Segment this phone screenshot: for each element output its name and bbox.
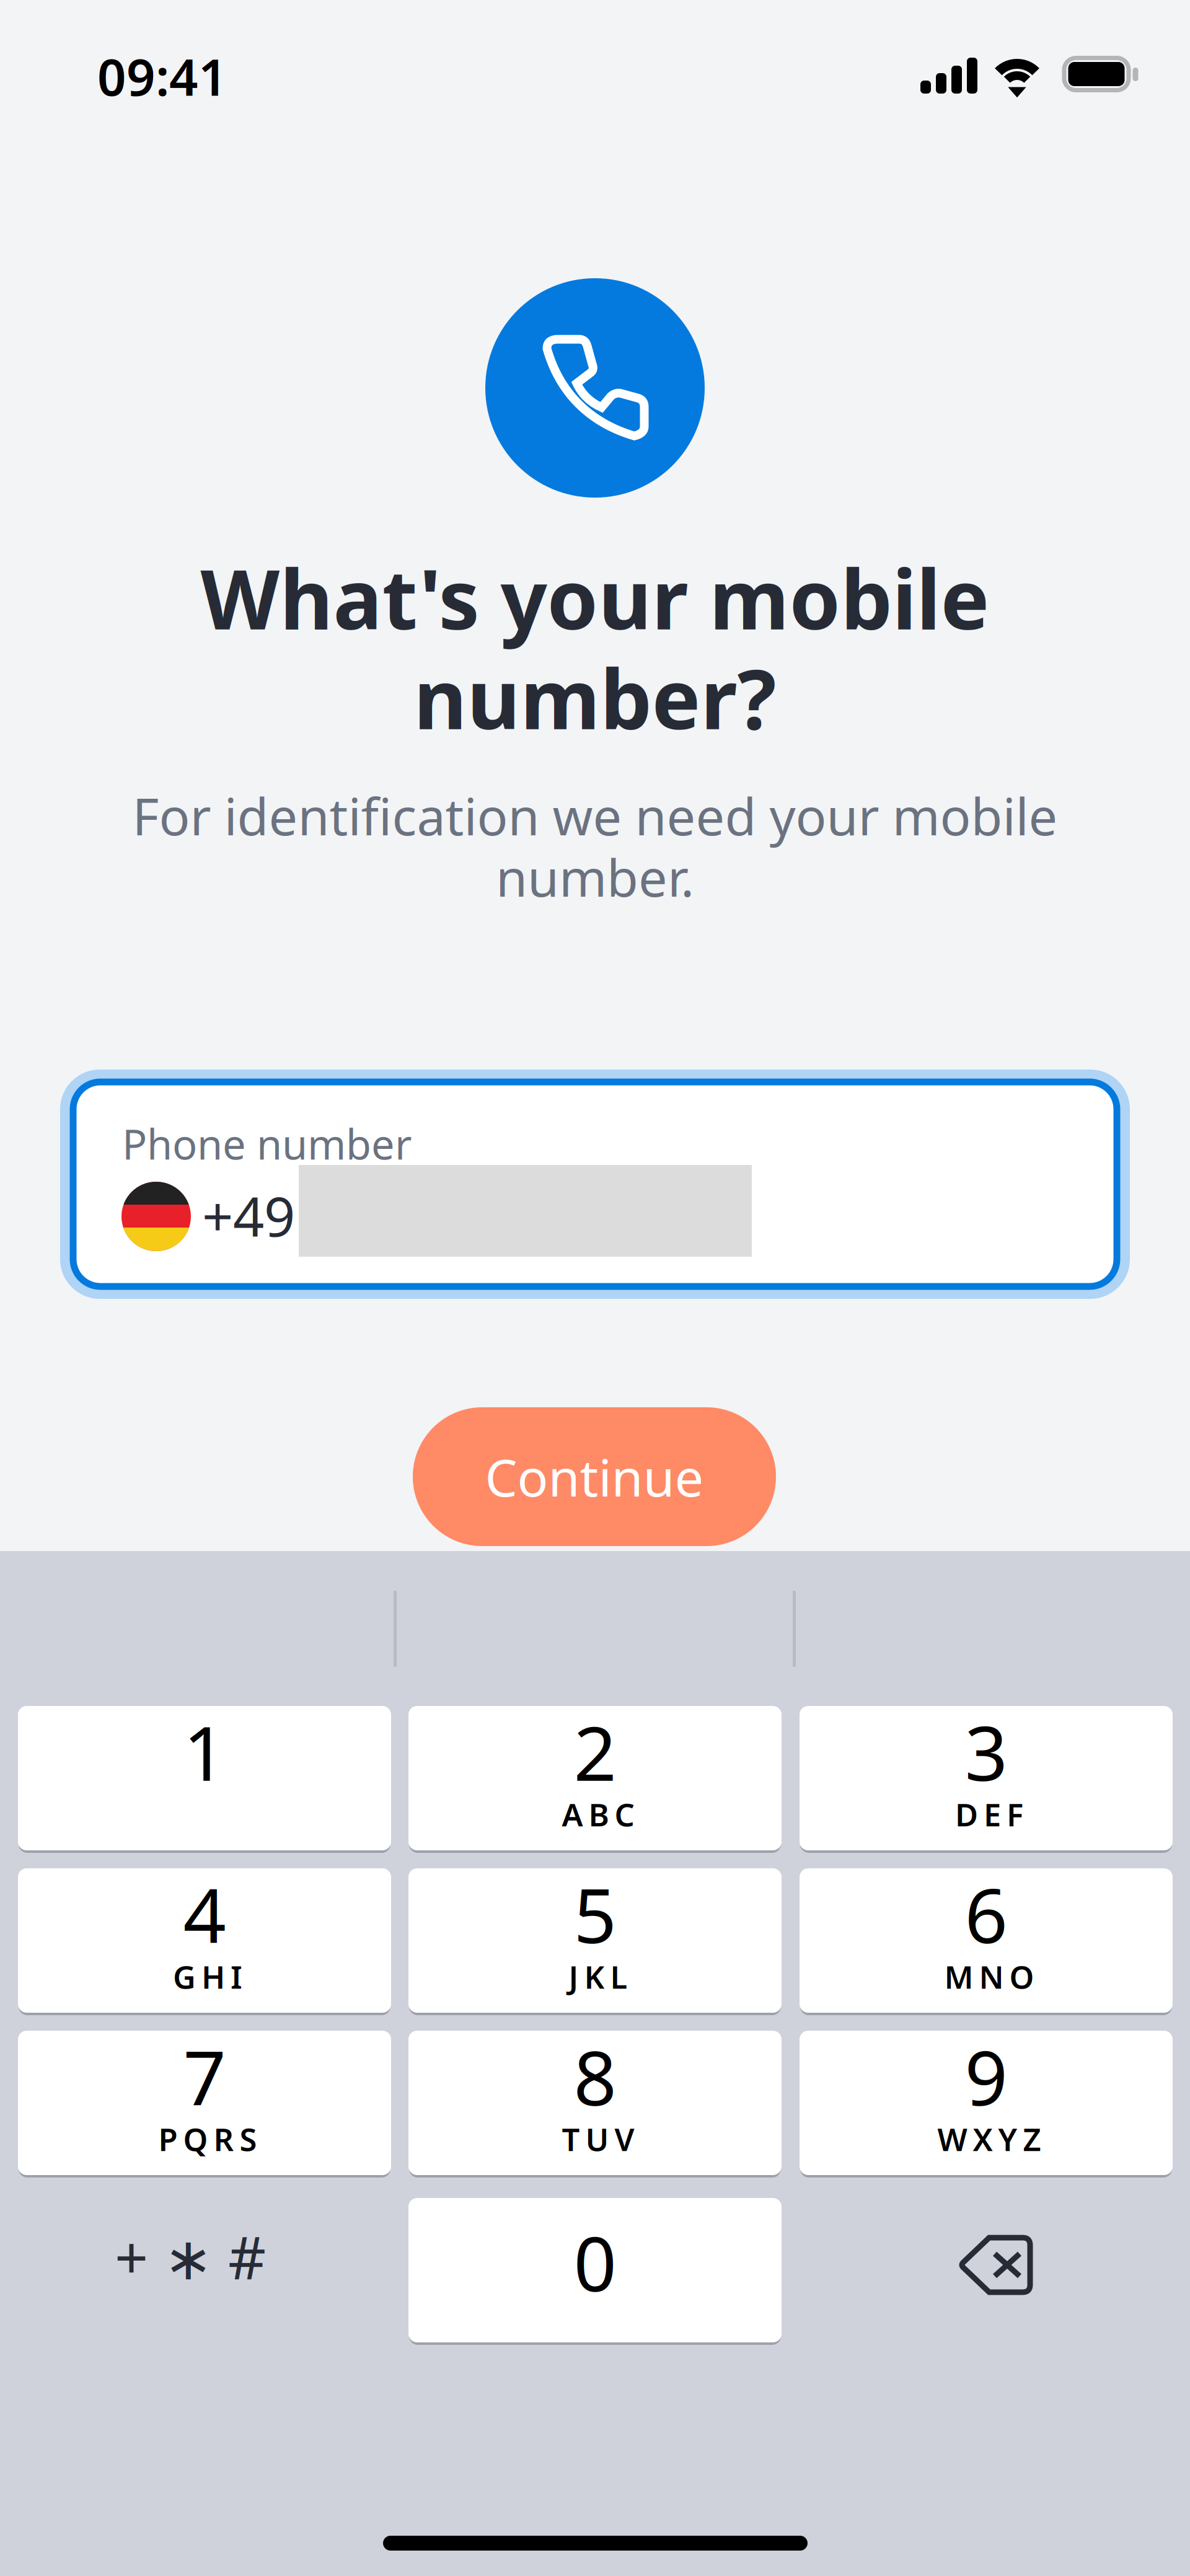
staticText: What's your mobile — [201, 543, 989, 652]
staticText: MNO — [944, 1956, 1034, 1997]
staticText: WXYZ — [937, 2118, 1041, 2160]
button[interactable]: Delete — [800, 2198, 1173, 2342]
button[interactable]: 1 — [18, 1706, 391, 1853]
staticText: 0 — [574, 2212, 616, 2312]
staticText: 6 — [965, 1864, 1007, 1964]
staticText: +49 — [202, 1179, 295, 1252]
button[interactable]: 0 — [408, 2198, 782, 2345]
button[interactable]: 3 — [800, 1706, 1173, 1853]
staticText: number. — [496, 843, 694, 911]
button[interactable]: 6 — [800, 1868, 1173, 2015]
staticText: + ∗ # — [115, 2218, 266, 2295]
staticText: Phone number — [122, 1116, 412, 1171]
staticText: 3 — [965, 1702, 1007, 1801]
button[interactable]: 5 — [408, 1868, 782, 2015]
staticText: 4 — [183, 1864, 226, 1964]
staticText: GHI — [173, 1956, 242, 1997]
button[interactable]: 7 — [18, 2031, 391, 2178]
staticText: For identification we need your mobile — [132, 781, 1058, 849]
staticText: 1 — [183, 1702, 226, 1801]
staticText: TUV — [562, 2118, 634, 2160]
staticText: 09:41 — [97, 43, 227, 110]
staticText: 2 — [574, 1702, 616, 1801]
button[interactable]: Continue — [413, 1407, 776, 1546]
staticText: 7 — [183, 2026, 226, 2126]
staticText: number? — [414, 643, 776, 752]
button[interactable]: Plus, star, pound — [18, 2198, 391, 2342]
staticText: JKL — [569, 1956, 628, 1997]
button[interactable]: 9 — [800, 2031, 1173, 2178]
button[interactable]: 2 — [408, 1706, 782, 1853]
button[interactable]: 8 — [408, 2031, 782, 2178]
staticText: 5 — [574, 1864, 616, 1964]
staticText: Continue — [485, 1443, 704, 1511]
staticText: PQRS — [158, 2118, 257, 2160]
staticText: 8 — [574, 2026, 616, 2126]
staticText: DEF — [955, 1793, 1023, 1835]
staticText: ABC — [562, 1793, 634, 1835]
button[interactable]: 4 — [18, 1868, 391, 2015]
staticText: 9 — [965, 2026, 1007, 2126]
